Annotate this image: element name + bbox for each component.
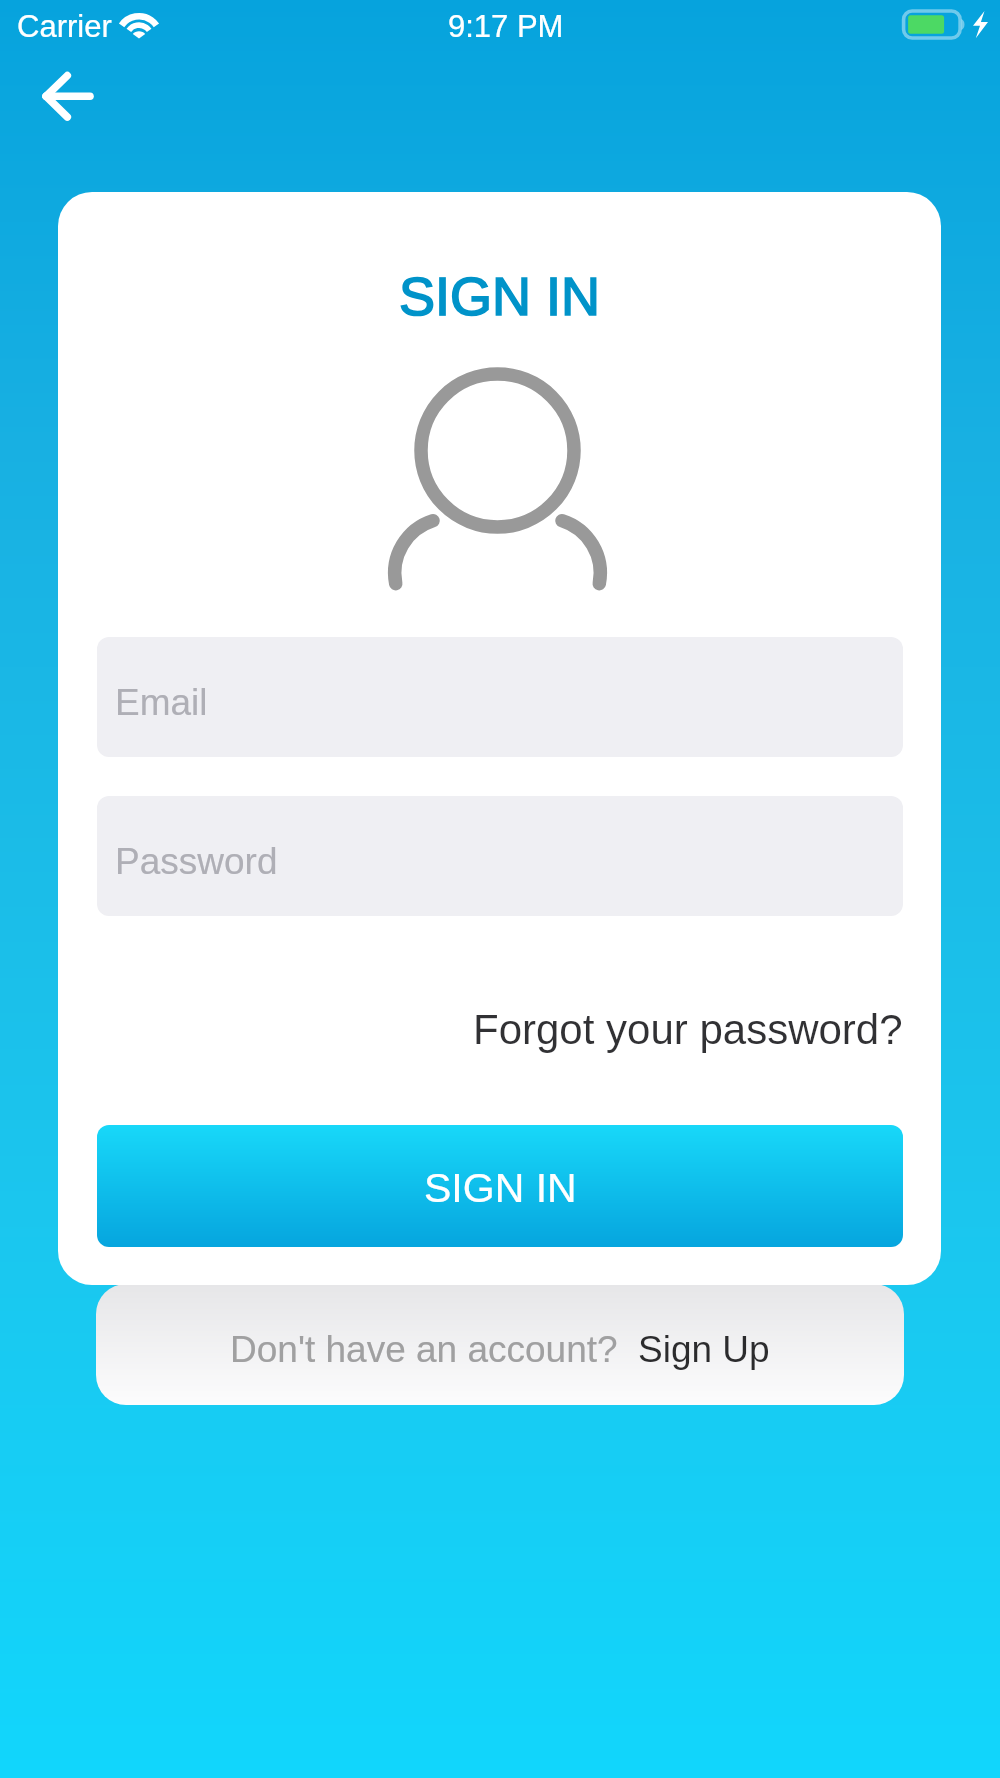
staticText: Password bbox=[115, 841, 278, 882]
staticText: Don't have an account? bbox=[230, 1329, 618, 1370]
staticText: Email bbox=[115, 682, 208, 723]
staticText: 9:17 PM bbox=[448, 9, 564, 44]
button[interactable]: Forgot your password? bbox=[403, 994, 903, 1064]
staticText: SIGN IN bbox=[424, 1165, 577, 1211]
staticText: SIGN IN bbox=[58, 266, 941, 326]
button[interactable]: Don't have an account? bbox=[96, 1284, 904, 1405]
staticText: Forgot your password? bbox=[473, 1006, 903, 1053]
staticText: Sign Up bbox=[638, 1329, 770, 1370]
staticText: Carrier bbox=[17, 9, 112, 44]
button[interactable]: Email bbox=[97, 637, 903, 757]
button[interactable]: Sign Up bbox=[638, 1329, 770, 1370]
button[interactable]: Back bbox=[14, 64, 122, 128]
button[interactable]: SIGN IN bbox=[97, 1125, 903, 1247]
button[interactable]: Password bbox=[97, 796, 903, 916]
